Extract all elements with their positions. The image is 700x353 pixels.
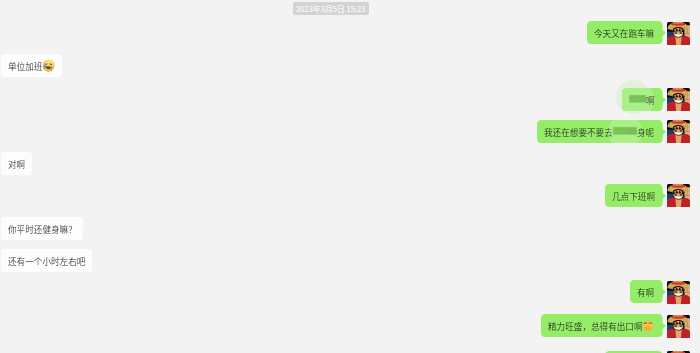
button[interactable]: 啊 <box>622 88 666 111</box>
button[interactable]: 2023年3月5日 15:23 <box>293 2 369 15</box>
button[interactable]: 单位加班 <box>1 54 62 77</box>
staticText: 有啊 <box>637 286 655 298</box>
staticText: 对啊 <box>8 158 26 170</box>
button[interactable]: 对啊 <box>1 152 32 175</box>
button[interactable]: 还有一个小时左右吧 <box>1 249 92 272</box>
staticText: 我还在想要不要去 <box>544 126 613 138</box>
button[interactable]: 哈哈哈哈哈 <box>605 351 666 353</box>
button[interactable]: Contact avatar <box>667 351 690 353</box>
button[interactable]: Contact avatar <box>667 22 690 45</box>
button[interactable]: Contact avatar <box>667 184 690 207</box>
button[interactable]: Contact avatar <box>667 120 690 143</box>
staticText: 精力旺盛，总得有出口啊 <box>548 320 643 332</box>
button[interactable]: 精力旺盛，总得有出口啊 <box>541 314 666 337</box>
staticText: 2023年3月5日 15:23 <box>296 3 366 14</box>
staticText: 啊 <box>646 94 655 106</box>
staticText: 身呢 <box>637 126 655 138</box>
staticText: 你平时还健身嘛？ <box>8 223 77 235</box>
staticText: 单位加班 <box>8 60 43 72</box>
staticText: 还有一个小时左右吧 <box>8 255 86 267</box>
button[interactable]: 今天又在跑车嘛 <box>587 21 666 44</box>
button[interactable]: 几点下班啊 <box>605 184 666 207</box>
button[interactable]: 你平时还健身嘛？ <box>1 217 83 240</box>
button[interactable]: Contact avatar <box>667 315 690 338</box>
button[interactable]: Contact avatar <box>667 281 690 304</box>
staticText: 几点下班啊 <box>612 190 655 202</box>
button[interactable]: Contact avatar <box>667 88 690 111</box>
staticText: 今天又在跑车嘛 <box>594 27 655 39</box>
button[interactable]: 我还在想要不要去 <box>537 120 666 143</box>
button[interactable]: 有啊 <box>630 280 666 303</box>
